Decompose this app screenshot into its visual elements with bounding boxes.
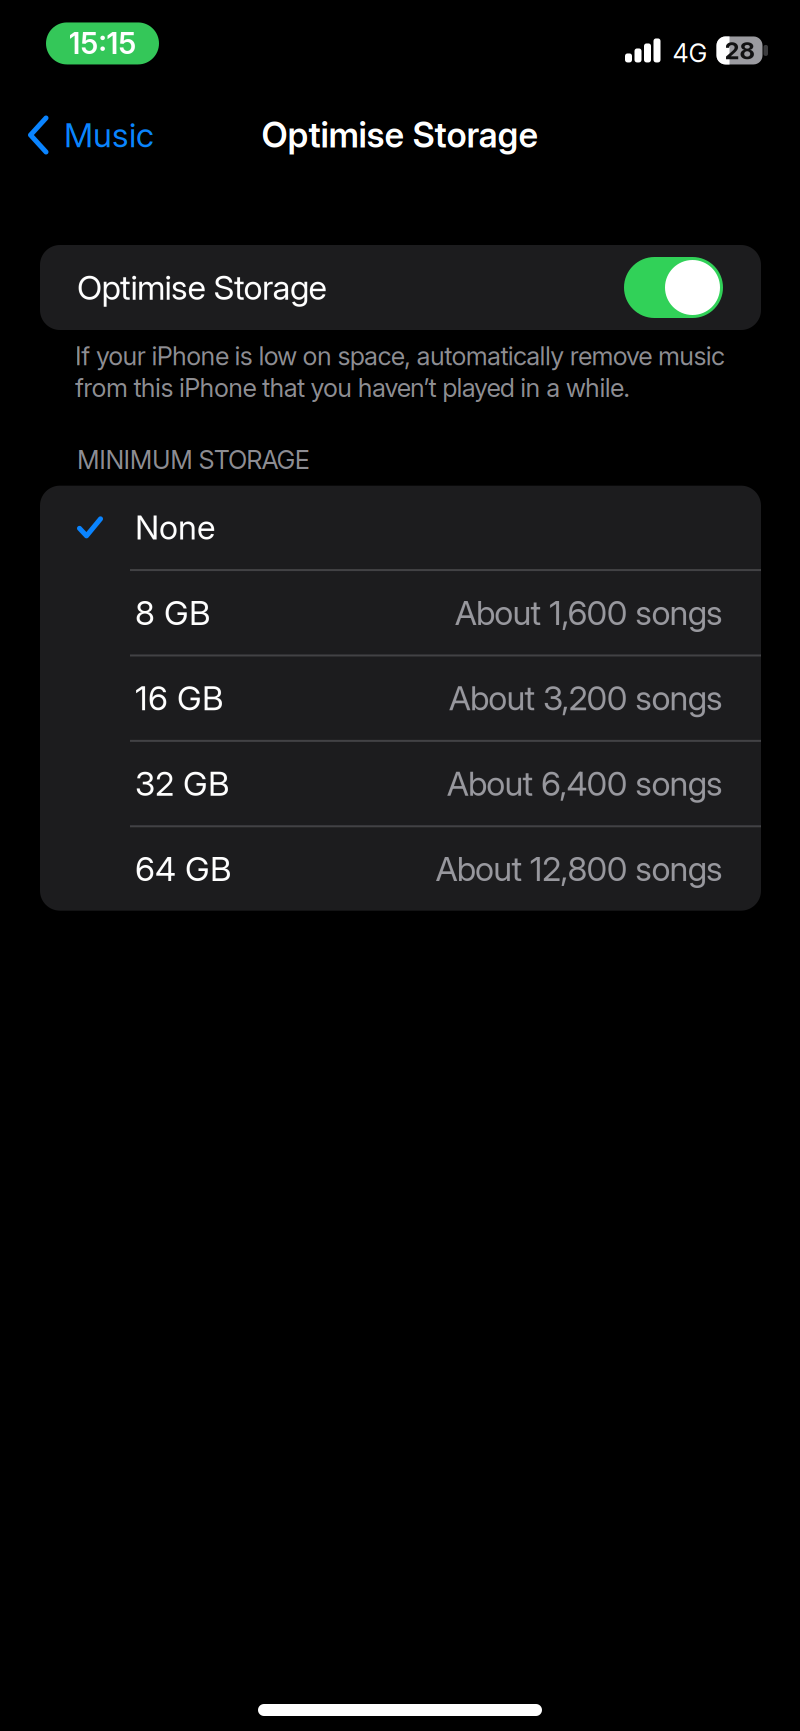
staticText: 64 GB <box>135 849 231 889</box>
staticText: Optimise Storage <box>77 268 326 307</box>
staticText: 4G <box>672 38 707 68</box>
button[interactable]: Return to call <box>46 22 159 64</box>
staticText: 16 GB <box>135 678 223 718</box>
button[interactable]: Back to Music <box>28 115 154 155</box>
staticText: 32 GB <box>135 764 229 803</box>
staticText: None <box>135 508 215 547</box>
button[interactable]: 32 GB <box>40 742 761 825</box>
staticText: Optimise Storage <box>261 115 538 155</box>
button[interactable]: Optimise Storage <box>40 245 761 330</box>
staticText: 15:15 <box>68 26 136 61</box>
staticText: 28 <box>724 36 754 65</box>
staticText: 8 GB <box>135 593 210 632</box>
button[interactable]: 64 GB <box>40 827 761 911</box>
staticText: About 6,400 songs <box>447 764 723 803</box>
button[interactable]: 16 GB <box>40 656 761 740</box>
staticText: Music <box>64 115 154 155</box>
staticText: If your iPhone is low on space, automati… <box>75 341 725 371</box>
staticText: About 12,800 songs <box>436 849 723 889</box>
staticText: About 3,200 songs <box>449 678 723 718</box>
button[interactable]: None <box>40 486 761 569</box>
staticText: About 1,600 songs <box>455 593 723 632</box>
button[interactable]: 8 GB <box>40 571 761 654</box>
staticText: MINIMUM STORAGE <box>77 445 310 475</box>
staticText: from this iPhone that you haven’t played… <box>75 373 630 403</box>
